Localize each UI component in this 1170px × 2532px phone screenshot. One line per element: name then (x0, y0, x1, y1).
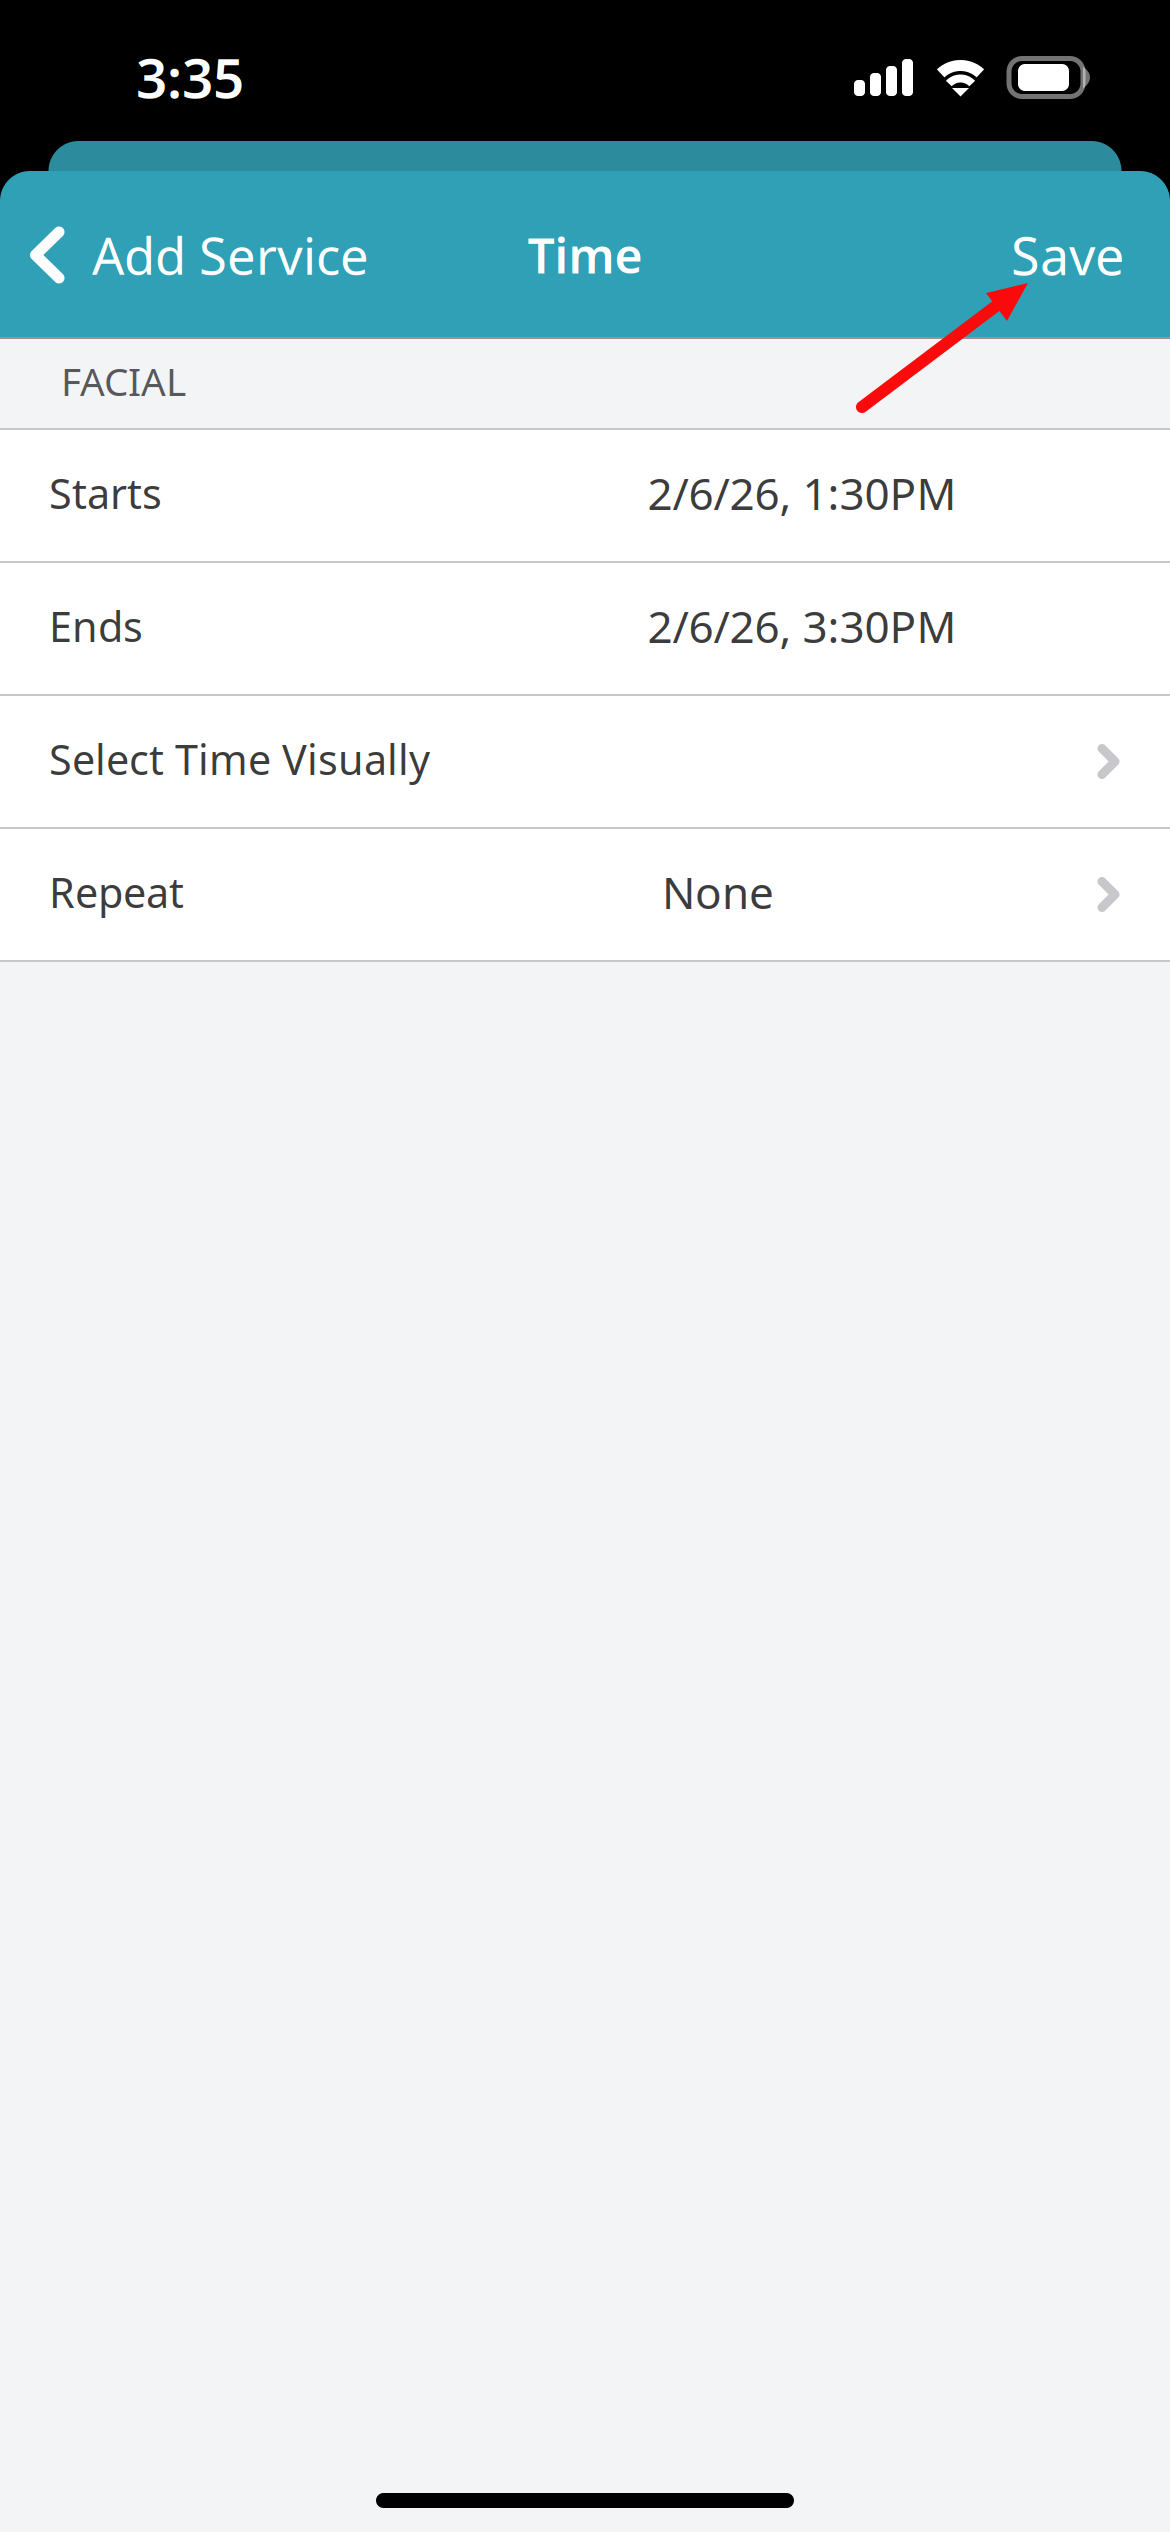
button[interactable]: Ends (0, 563, 1170, 694)
staticText: 2/6/26, 3:30PM (647, 597, 956, 655)
staticText: Ends (49, 599, 143, 653)
button[interactable]: Starts (0, 430, 1170, 561)
staticText: Select Time Visually (49, 732, 430, 786)
staticText: 2/6/26, 1:30PM (647, 464, 956, 522)
staticText: None (662, 863, 774, 921)
staticText: Time (527, 223, 642, 287)
button[interactable]: Select Time Visually (0, 696, 1170, 827)
button[interactable]: Save (944, 212, 1170, 298)
staticText: Save (1011, 220, 1124, 290)
button[interactable]: Add Service (0, 212, 449, 298)
staticText: Repeat (49, 865, 184, 919)
staticText: FACIAL (61, 355, 186, 407)
staticText: Add Service (92, 221, 369, 289)
staticText: Starts (49, 466, 162, 520)
button[interactable]: Repeat (0, 829, 1170, 960)
staticText: 3:35 (136, 41, 244, 113)
